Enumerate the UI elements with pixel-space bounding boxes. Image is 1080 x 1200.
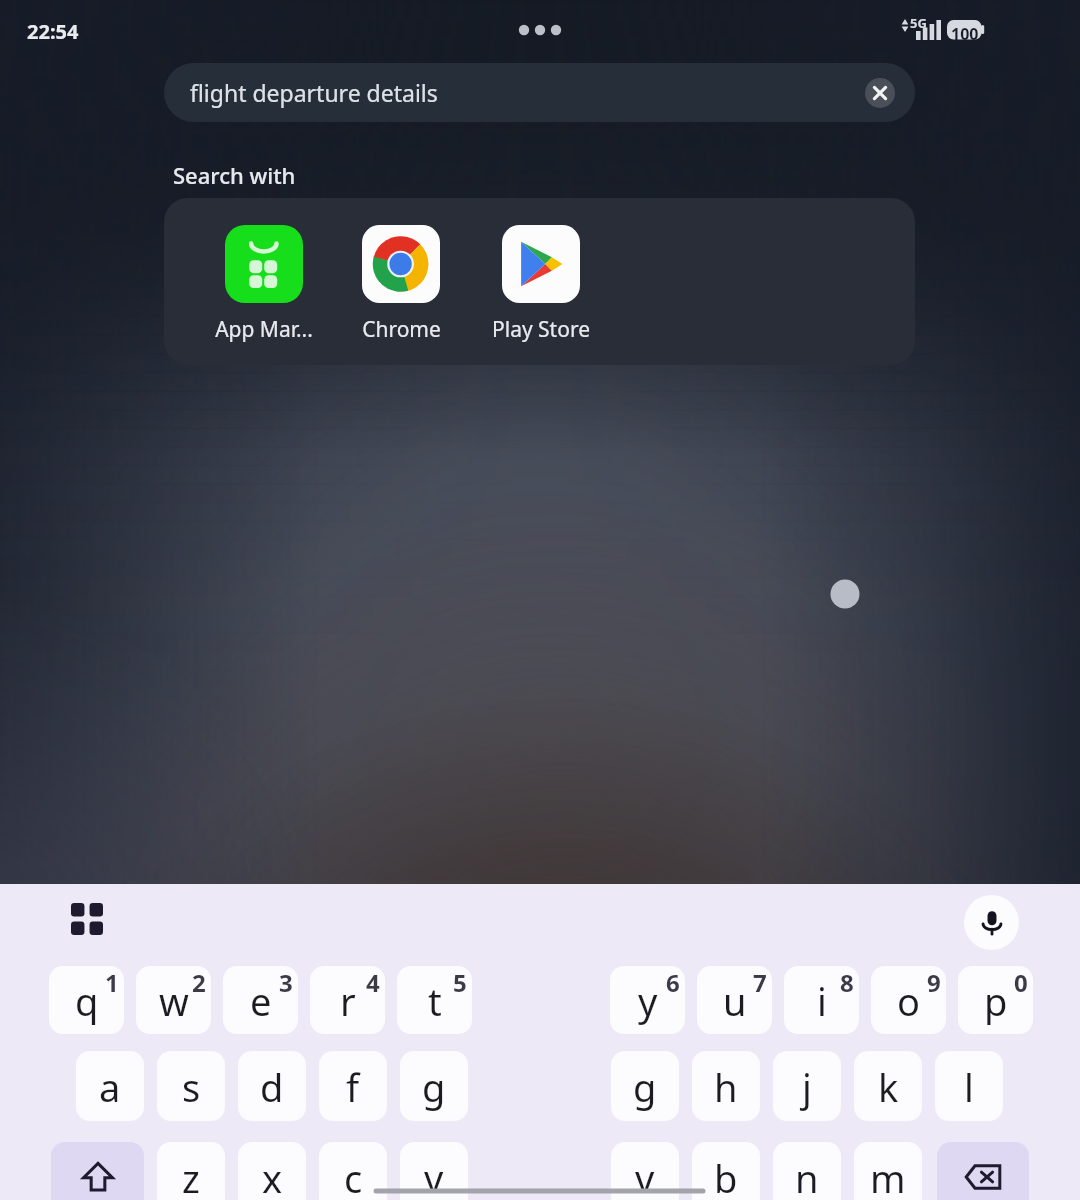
button[interactable]: i	[784, 966, 859, 1034]
button[interactable]: m	[854, 1142, 922, 1200]
button[interactable]: App Mar...	[195, 225, 333, 344]
staticText: h	[714, 1061, 738, 1113]
staticText: g	[633, 1061, 657, 1113]
button[interactable]: p	[958, 966, 1033, 1034]
staticText: c	[344, 1152, 363, 1200]
staticText: z	[182, 1152, 200, 1200]
button[interactable]: w	[136, 966, 211, 1034]
button[interactable]: x	[238, 1142, 306, 1200]
staticText: 9	[927, 966, 941, 999]
staticText: t	[428, 975, 442, 1027]
button[interactable]: v	[400, 1142, 468, 1200]
staticText: f	[346, 1061, 360, 1113]
button[interactable]: z	[157, 1142, 225, 1200]
staticText: 22:54	[27, 18, 79, 45]
button[interactable]: r	[310, 966, 385, 1034]
staticText: g	[422, 1061, 446, 1113]
staticText: 6	[666, 966, 680, 999]
staticText: 8	[840, 966, 854, 999]
button[interactable]: y	[610, 966, 685, 1034]
staticText: j	[802, 1061, 812, 1113]
staticText: p	[984, 975, 1008, 1027]
staticText: 1	[105, 966, 119, 999]
button[interactable]: b	[692, 1142, 760, 1200]
staticText: v	[635, 1152, 655, 1200]
button[interactable]: s	[157, 1051, 225, 1121]
button[interactable]: j	[773, 1051, 841, 1121]
staticText: q	[75, 975, 99, 1027]
staticText: i	[817, 975, 827, 1027]
button[interactable]: Play Store	[472, 225, 610, 344]
staticText: l	[964, 1061, 974, 1113]
staticText: n	[795, 1152, 819, 1200]
button[interactable]: n	[773, 1142, 841, 1200]
staticText: k	[878, 1061, 899, 1113]
button[interactable]: f	[319, 1051, 387, 1121]
staticText: x	[262, 1152, 283, 1200]
button[interactable]: k	[854, 1051, 922, 1121]
button[interactable]: a	[76, 1051, 144, 1121]
staticText: App Mar...	[215, 315, 313, 344]
button[interactable]: l	[935, 1051, 1003, 1121]
button[interactable]: Voice input	[964, 895, 1019, 950]
staticText: v	[424, 1152, 444, 1200]
button[interactable]: Keyboard options	[71, 903, 103, 935]
staticText: w	[159, 975, 189, 1027]
staticText: 0	[1014, 966, 1028, 999]
button[interactable]: Chrome	[332, 225, 470, 344]
button[interactable]: e	[223, 966, 298, 1034]
staticText: a	[99, 1061, 121, 1113]
staticText: r	[340, 975, 356, 1027]
staticText: o	[897, 975, 920, 1027]
staticText: 4	[366, 966, 380, 999]
staticText: u	[723, 975, 747, 1027]
button[interactable]: d	[238, 1051, 306, 1121]
button[interactable]: flight departure details	[164, 63, 915, 122]
staticText: d	[260, 1061, 284, 1113]
staticText: flight departure details	[190, 77, 438, 108]
staticText: 5	[453, 966, 467, 999]
staticText: m	[870, 1152, 906, 1200]
button[interactable]: c	[319, 1142, 387, 1200]
staticText: Chrome	[362, 315, 441, 344]
button[interactable]: Shift	[51, 1142, 144, 1200]
staticText: s	[182, 1061, 201, 1113]
button[interactable]: h	[692, 1051, 760, 1121]
staticText: 7	[753, 966, 767, 999]
staticText: b	[714, 1152, 738, 1200]
button[interactable]: Clear search	[865, 78, 895, 108]
button[interactable]: g	[400, 1051, 468, 1121]
button[interactable]: u	[697, 966, 772, 1034]
staticText: 3	[279, 966, 293, 999]
staticText: Search with	[173, 160, 296, 190]
staticText: y	[638, 975, 658, 1027]
staticText: 100	[951, 23, 979, 45]
staticText: Play Store	[492, 315, 590, 344]
button[interactable]: Backspace	[937, 1142, 1029, 1200]
button[interactable]: g	[611, 1051, 679, 1121]
staticText: 2	[192, 966, 206, 999]
staticText: 5G	[910, 14, 927, 32]
staticText: e	[250, 975, 272, 1027]
button[interactable]: q	[49, 966, 124, 1034]
button[interactable]: o	[871, 966, 946, 1034]
button[interactable]: t	[397, 966, 472, 1034]
button[interactable]: v	[611, 1142, 679, 1200]
